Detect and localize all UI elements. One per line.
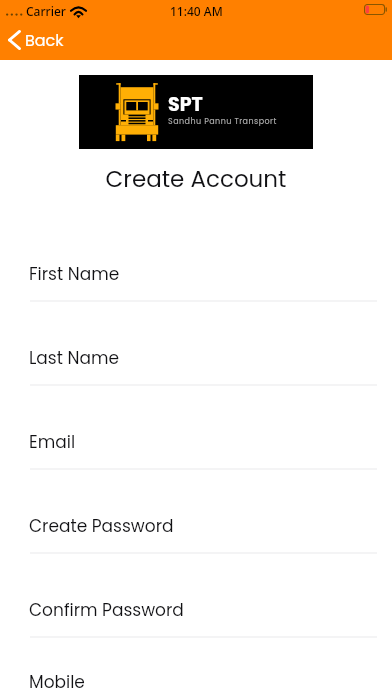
button[interactable]: Create Password — [0, 504, 392, 588]
staticText: Back — [25, 29, 64, 51]
staticText: Last Name — [29, 346, 119, 370]
staticText: Email — [29, 430, 76, 454]
staticText: Sandhu Pannu Transport — [168, 116, 277, 127]
staticText: Create Password — [29, 514, 174, 538]
staticText: Mobile — [29, 670, 85, 694]
button[interactable]: Back — [4, 27, 68, 53]
button[interactable]: Confirm Password — [0, 588, 392, 672]
staticText: Carrier — [26, 3, 66, 19]
button[interactable]: Email — [0, 420, 392, 504]
staticText: Confirm Password — [29, 598, 184, 622]
button[interactable]: Mobile — [0, 672, 392, 696]
staticText: 11:40 AM — [170, 3, 223, 19]
staticText: Create Account — [0, 163, 392, 195]
staticText: First Name — [29, 262, 120, 286]
staticText: SPT — [168, 91, 203, 118]
button[interactable]: Last Name — [0, 336, 392, 420]
button[interactable]: First Name — [0, 252, 392, 336]
